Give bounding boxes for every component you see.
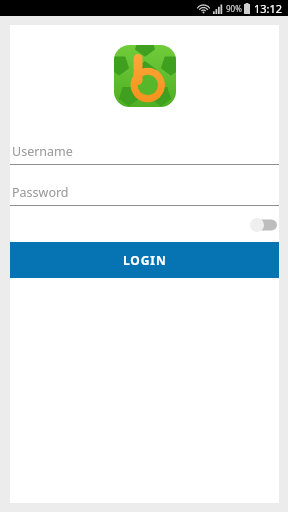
staticText: Username [12,143,73,160]
button[interactable]: Password [10,179,279,206]
staticText: 13:12 [254,1,283,16]
staticText: Password [12,184,69,201]
button[interactable]: LOGIN [10,242,279,278]
staticText: 90% [226,3,242,14]
button[interactable]: Username [10,138,279,165]
button[interactable]: Show password toggle [248,215,279,235]
staticText: LOGIN [123,252,167,268]
